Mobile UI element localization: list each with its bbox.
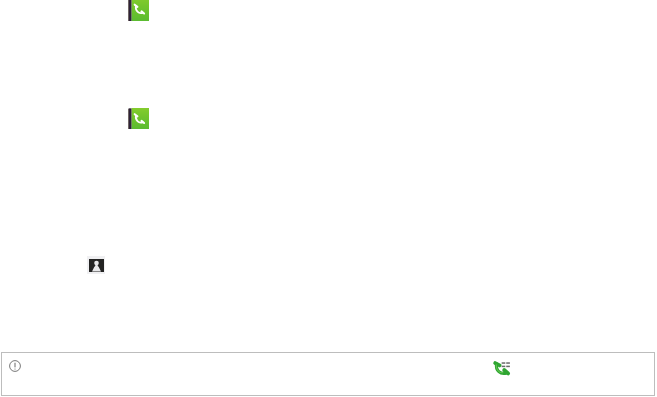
button[interactable]: Phone: [128, 0, 149, 21]
button[interactable]: Dialer: [494, 359, 511, 375]
button[interactable]: Contact: [87, 256, 105, 274]
button[interactable]: Phone: [128, 108, 149, 129]
button[interactable]: Page info: [9, 360, 21, 372]
